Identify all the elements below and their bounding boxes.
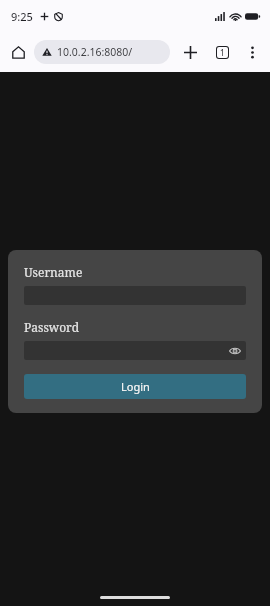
button[interactable]: Show password — [24, 341, 246, 360]
staticText: Login — [121, 379, 150, 394]
staticText: 10.0.2.16:8080/shttps-st — [57, 45, 162, 59]
button[interactable]: Home — [6, 40, 30, 64]
staticText: 1 — [220, 47, 225, 58]
button[interactable]: Show password — [227, 343, 242, 358]
button[interactable]: Login — [24, 374, 246, 399]
staticText: 9:25 — [11, 9, 33, 24]
staticText: Username — [24, 264, 83, 280]
button[interactable]: 10.0.2.16:8080/shttps-st — [34, 40, 170, 64]
staticText: Password — [24, 319, 80, 335]
button[interactable]: Tabs — [209, 39, 235, 65]
button[interactable]: New tab — [177, 39, 203, 65]
button[interactable]: More options — [239, 39, 265, 65]
